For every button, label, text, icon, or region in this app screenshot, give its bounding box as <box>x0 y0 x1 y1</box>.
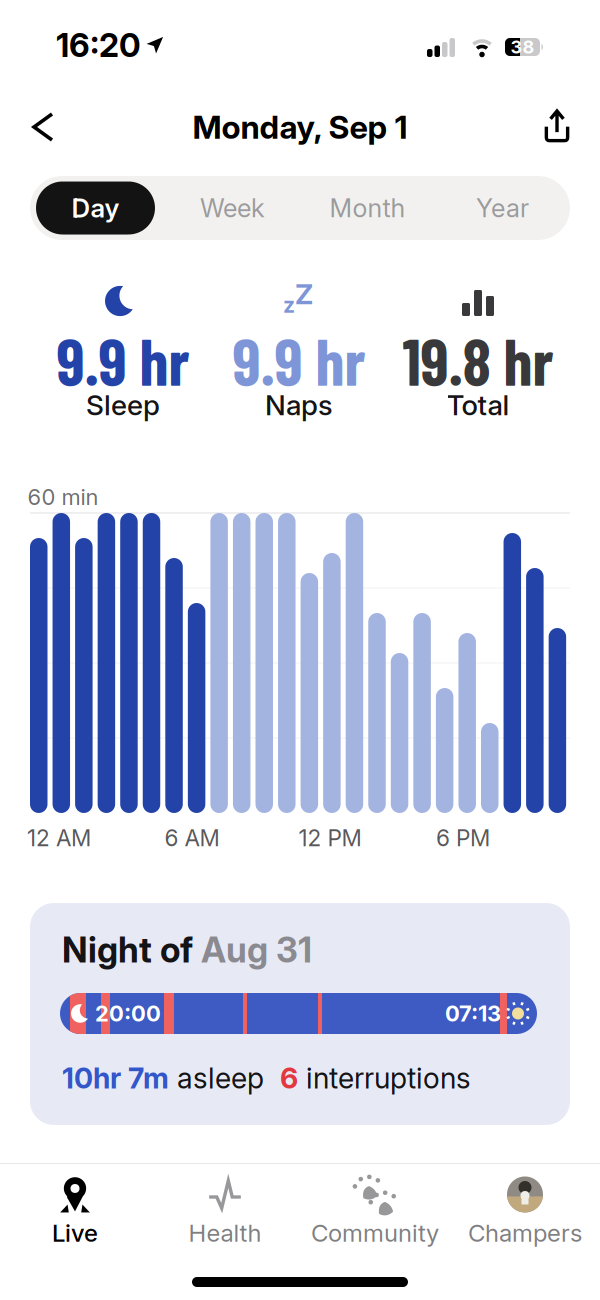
staticText: Health <box>188 1218 261 1247</box>
staticText: 9.9 hr <box>232 321 365 399</box>
staticText: Aug 31 <box>201 929 312 971</box>
staticText: Champers <box>468 1218 582 1247</box>
staticText: 19.8 hr <box>402 321 553 399</box>
staticText: 9.9 hr <box>56 321 189 399</box>
staticText: 10hr 7m <box>62 1061 169 1095</box>
staticText: z <box>283 292 295 318</box>
staticText: Year <box>476 193 529 223</box>
staticText: 60 min <box>27 484 98 510</box>
staticText: Sleep <box>86 388 160 422</box>
button[interactable]: Year <box>435 176 570 240</box>
staticText: Week <box>200 193 265 223</box>
staticText: Community <box>311 1218 439 1247</box>
staticText: 12 PM <box>298 824 361 852</box>
staticText: Monday, Sep 1 <box>192 108 407 146</box>
button[interactable]: Day <box>36 181 155 234</box>
staticText: 12 AM <box>27 824 91 852</box>
staticText: 38 <box>510 36 534 58</box>
staticText: Month <box>329 193 405 223</box>
staticText: Live <box>52 1218 98 1247</box>
staticText: Day <box>71 192 119 224</box>
staticText: 07:13 <box>445 1000 501 1027</box>
button[interactable]: Live <box>0 1170 150 1254</box>
staticText: 6 <box>280 1061 298 1095</box>
staticText: 6 PM <box>436 824 490 852</box>
staticText: 6 AM <box>164 824 219 852</box>
button[interactable]: Share <box>543 109 571 143</box>
staticText: Naps <box>265 388 333 422</box>
button[interactable]: Month <box>300 176 435 240</box>
staticText: Total <box>446 388 509 422</box>
staticText: 16:20 <box>56 25 141 65</box>
staticText: asleep <box>169 1061 264 1095</box>
staticText: 20:00 <box>95 1000 161 1027</box>
button[interactable]: Champers <box>450 1170 600 1254</box>
button[interactable]: Health <box>150 1170 300 1254</box>
button[interactable]: Week <box>165 176 300 240</box>
button[interactable]: Community <box>300 1170 450 1254</box>
button[interactable]: Back <box>32 112 54 142</box>
staticText: Z <box>295 277 313 311</box>
staticText: Night of <box>62 929 201 971</box>
staticText: interruptions <box>298 1061 471 1095</box>
